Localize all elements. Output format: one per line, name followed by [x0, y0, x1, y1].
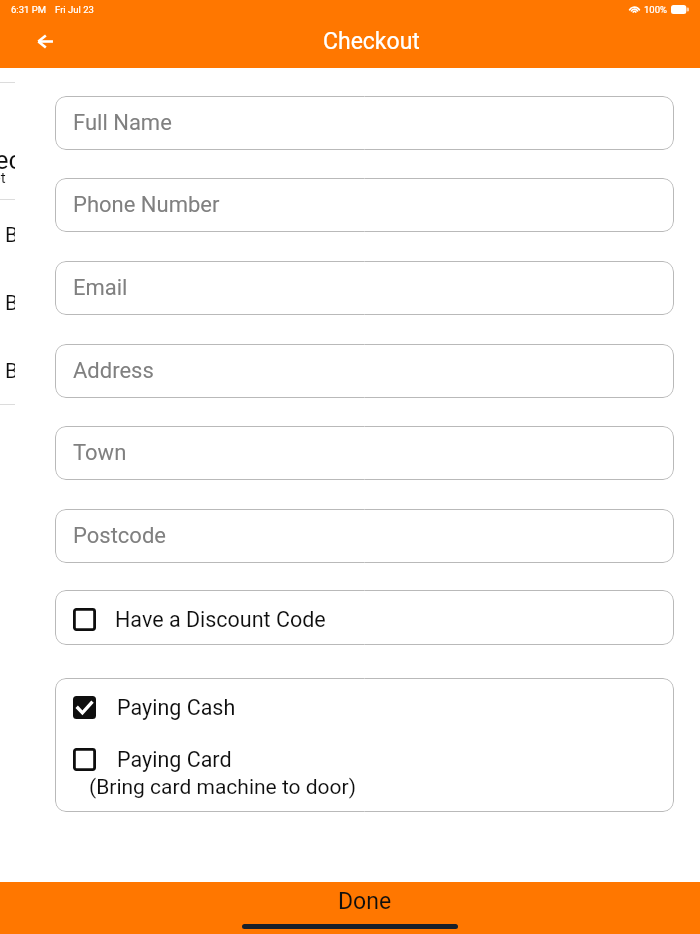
staticText: 6:31 PM [11, 4, 46, 15]
button[interactable]: Postcode [55, 509, 674, 563]
button[interactable]: Full Name [55, 96, 674, 150]
staticText: Town [73, 440, 127, 466]
staticText: Full Name [73, 110, 172, 136]
button[interactable]: Have a Discount Code [55, 590, 674, 645]
staticText: Checkout [323, 28, 420, 55]
staticText: (Bring card machine to door) [89, 775, 357, 800]
button[interactable]: Town [55, 426, 674, 480]
staticText: Fri Jul 23 [55, 4, 94, 15]
staticText: Postcode [73, 523, 166, 549]
button[interactable]: Email [55, 261, 674, 315]
button[interactable]: Done [338, 888, 392, 915]
staticText: 100% [644, 4, 667, 15]
button[interactable]: Back [23, 19, 67, 63]
staticText: Burger Meal [5, 359, 118, 384]
staticText: Address [73, 358, 154, 384]
button[interactable]: Address [55, 344, 674, 398]
staticText: Your Basket Rec [0, 145, 23, 175]
staticText: Paying Cash [117, 695, 236, 720]
staticText: Burger Meal [5, 291, 118, 316]
button[interactable]: Paying Card [73, 747, 674, 800]
staticText: Paying Card [117, 747, 232, 772]
button[interactable]: Phone Number [55, 178, 674, 232]
staticText: Phone Number [73, 192, 220, 218]
staticText: Email [73, 275, 128, 301]
staticText: Have a Discount Code [115, 607, 326, 632]
button[interactable]: Paying Cash [73, 695, 674, 720]
staticText: Burger Meal [5, 223, 118, 248]
staticText: 4 items in basket [0, 169, 6, 187]
